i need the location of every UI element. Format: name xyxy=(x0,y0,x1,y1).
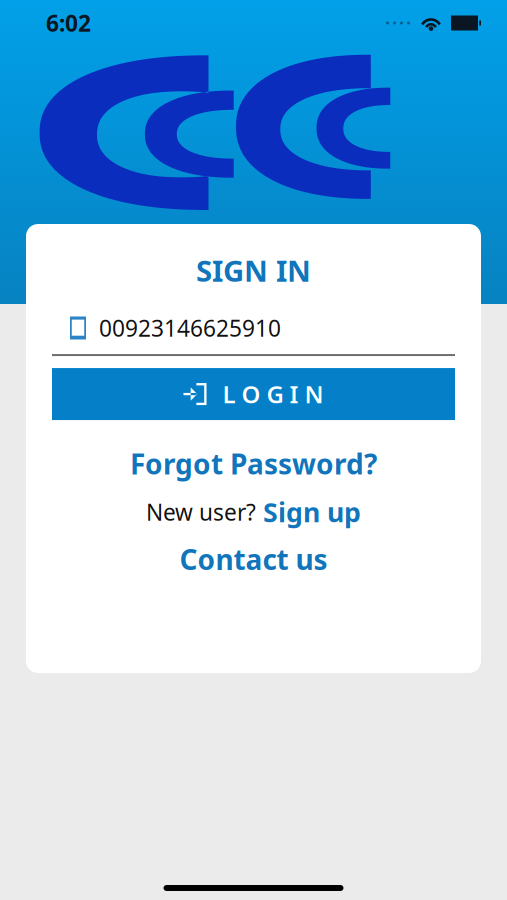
staticText: Sign up xyxy=(263,494,361,530)
staticText: Contact us xyxy=(179,541,327,578)
button[interactable]: Forgot Password? xyxy=(130,420,377,482)
staticText: 00923146625910 xyxy=(99,313,281,343)
staticText: Forgot Password? xyxy=(130,445,377,482)
staticText: New user? xyxy=(146,497,256,527)
staticText: 6:02 xyxy=(46,8,91,38)
staticText: SIGN IN xyxy=(196,251,311,290)
button[interactable]: Contact us xyxy=(179,530,327,578)
staticText: L O G I N xyxy=(222,378,323,410)
button[interactable]: L O G I N xyxy=(52,368,455,420)
button[interactable]: Sign up xyxy=(263,494,361,530)
